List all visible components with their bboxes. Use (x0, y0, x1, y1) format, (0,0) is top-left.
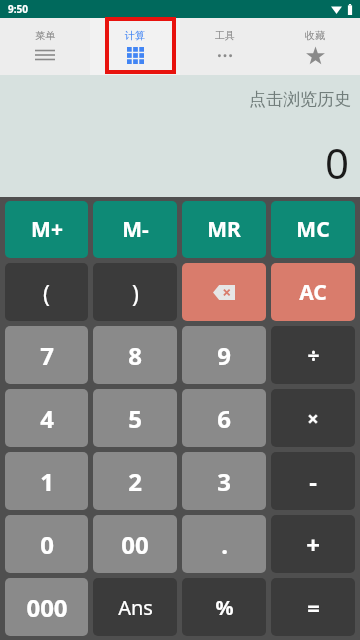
button[interactable]: + (271, 515, 355, 573)
button[interactable]: M- (93, 201, 177, 258)
staticText: % (215, 594, 234, 621)
button[interactable]: 9 (182, 326, 266, 384)
staticText: ) (132, 277, 139, 308)
button[interactable]: 点击浏览历史 (0, 75, 360, 197)
button[interactable]: 4 (5, 389, 88, 447)
button[interactable]: AC (271, 263, 355, 321)
staticText: 9:50 (8, 2, 28, 16)
button[interactable]: ( (5, 263, 88, 321)
button[interactable]: 工具 (180, 18, 270, 75)
staticText: 4 (40, 402, 54, 435)
button[interactable]: 000 (5, 578, 88, 636)
staticText: 0 (325, 134, 350, 191)
staticText: 00 (121, 528, 149, 561)
button[interactable]: Delete (182, 263, 266, 321)
staticText: ( (43, 277, 50, 308)
staticText: 计算 (125, 29, 145, 42)
staticText: MR (207, 215, 241, 244)
button[interactable]: 菜单 (0, 18, 90, 75)
button[interactable]: 2 (93, 452, 177, 510)
staticText: 6 (217, 402, 231, 435)
button[interactable]: 收藏 (270, 18, 360, 75)
button[interactable]: × (271, 389, 355, 447)
button[interactable]: ÷ (271, 326, 355, 384)
staticText: - (309, 465, 317, 498)
staticText: MC (296, 215, 330, 244)
staticText: 点击浏览历史 (249, 89, 351, 110)
staticText: 2 (128, 465, 142, 498)
button[interactable]: = (271, 578, 355, 636)
button[interactable]: MC (271, 201, 355, 258)
button[interactable]: M+ (5, 201, 88, 258)
staticText: + (306, 528, 320, 561)
staticText: 菜单 (35, 29, 55, 42)
staticText: M+ (31, 215, 63, 244)
staticText: 9 (217, 339, 231, 372)
button[interactable]: 6 (182, 389, 266, 447)
staticText: 7 (40, 339, 54, 372)
staticText: = (307, 592, 320, 622)
staticText: . (221, 528, 228, 561)
button[interactable]: MR (182, 201, 266, 258)
staticText: 收藏 (305, 29, 325, 42)
staticText: 工具 (215, 29, 235, 42)
staticText: 3 (217, 465, 231, 498)
button[interactable]: 3 (182, 452, 266, 510)
staticText: M- (122, 215, 149, 244)
staticText: AC (299, 278, 327, 307)
button[interactable]: - (271, 452, 355, 510)
button[interactable]: % (182, 578, 266, 636)
staticText: 0 (40, 528, 54, 561)
button[interactable]: 计算 (90, 18, 180, 75)
button[interactable]: . (182, 515, 266, 573)
button[interactable]: 5 (93, 389, 177, 447)
button[interactable]: 8 (93, 326, 177, 384)
button[interactable]: 1 (5, 452, 88, 510)
staticText: 5 (128, 402, 142, 435)
button[interactable]: 7 (5, 326, 88, 384)
staticText: 8 (128, 339, 142, 372)
staticText: ÷ (307, 341, 320, 370)
button[interactable]: ) (93, 263, 177, 321)
staticText: 1 (40, 465, 54, 498)
staticText: Ans (118, 594, 153, 621)
button[interactable]: 00 (93, 515, 177, 573)
staticText: × (307, 405, 319, 432)
button[interactable]: 0 (5, 515, 88, 573)
button[interactable]: Ans (93, 578, 177, 636)
staticText: 000 (26, 591, 68, 624)
